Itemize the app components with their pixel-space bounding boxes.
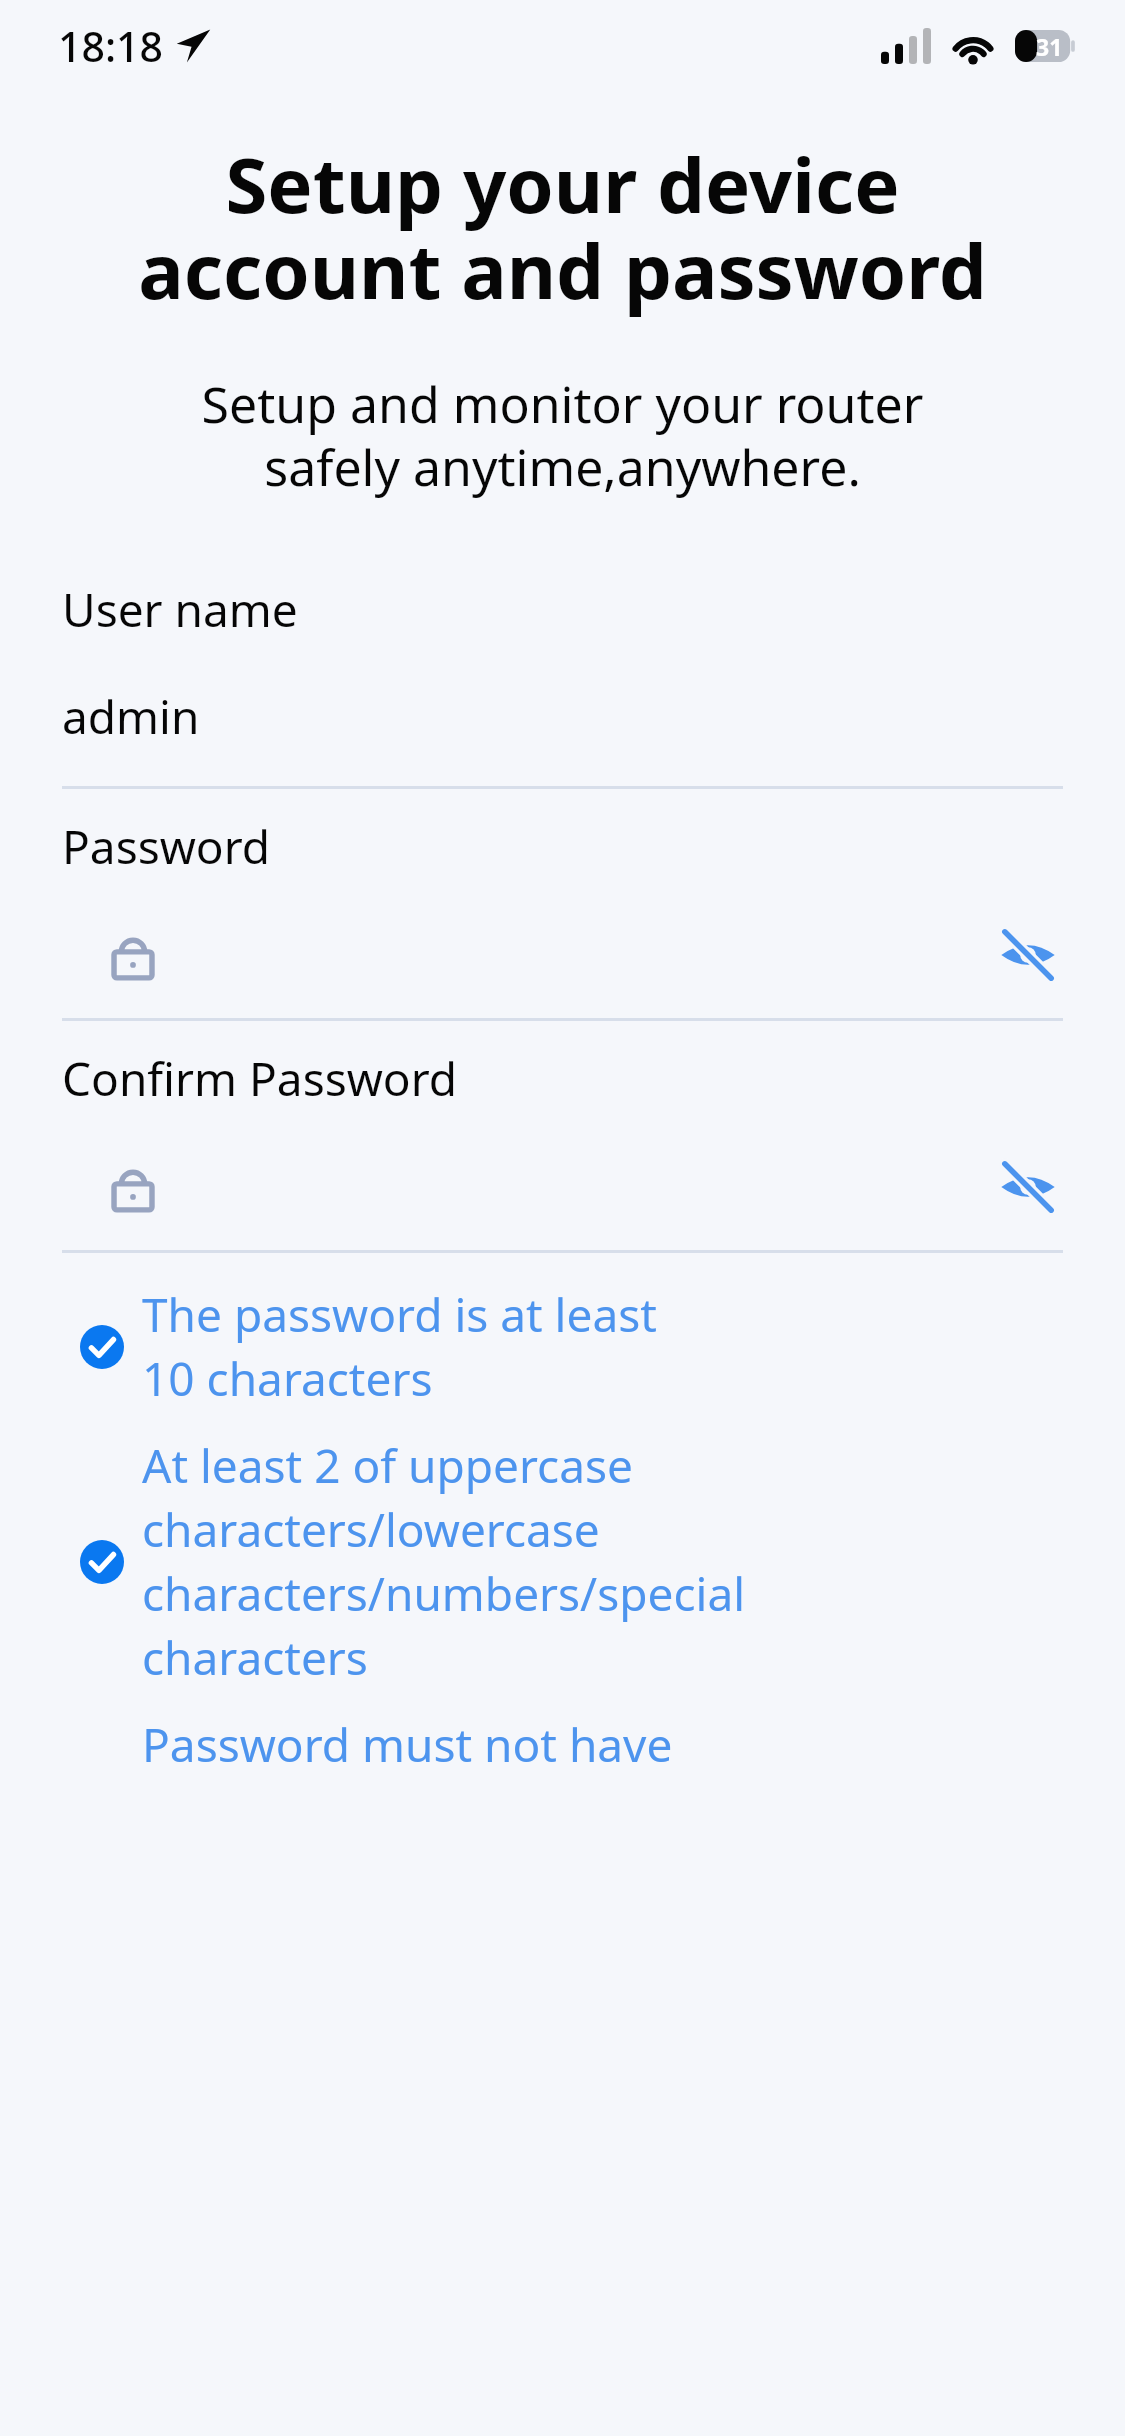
button[interactable]: At least 2 of uppercase characters/lower… [62,1434,1063,1689]
staticText: Password [62,815,271,878]
staticText: At least 2 of uppercase characters/lower… [142,1434,1063,1689]
button[interactable]: Password field [104,1158,162,1216]
staticText: 31 [1036,31,1063,62]
staticText: The password is at least 10 characters [142,1283,1063,1410]
button[interactable]: The password is at least 10 characters [62,1283,1063,1410]
button[interactable]: Password must not have [62,1713,1063,1776]
staticText: 18:18 [58,18,163,74]
button[interactable]: Show confirm password [993,1152,1063,1222]
staticText: Setup and monitor your router safely any… [22,370,1103,500]
staticText: Password must not have [142,1713,1063,1776]
staticText: User name [62,578,298,641]
button[interactable]: Password field [104,926,162,984]
staticText: Setup your device account and password [2,132,1123,322]
staticText: Confirm Password [62,1047,458,1110]
button[interactable]: admin [62,685,1063,748]
button[interactable]: Show password [993,920,1063,990]
